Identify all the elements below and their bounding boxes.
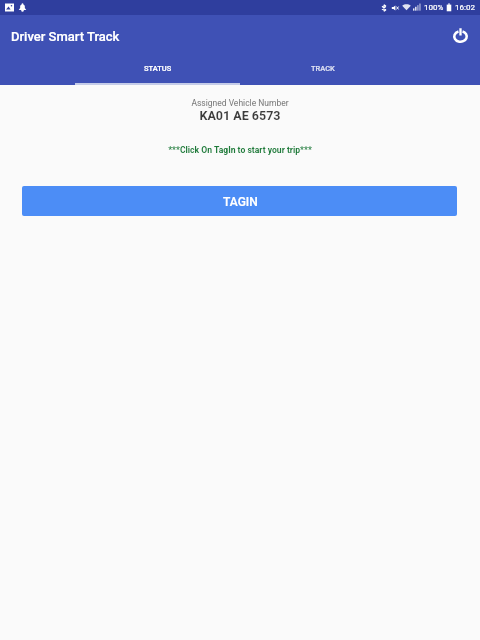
button[interactable]: STATUS [75, 57, 240, 85]
staticText: STATUS [144, 64, 172, 73]
staticText: TRACK [311, 64, 335, 73]
staticText: Assigned Vehicle Number [0, 98, 480, 108]
button[interactable]: TRACK [240, 57, 405, 85]
staticText: 16:02 [455, 3, 475, 12]
staticText: KA01 AE 6573 [0, 108, 480, 123]
staticText: ***Click On TagIn to start your trip*** [0, 145, 480, 155]
staticText: TAGIN [223, 195, 258, 209]
button[interactable]: Power / Logout [446, 21, 474, 49]
button[interactable]: TAGIN [22, 186, 457, 216]
staticText: 100% [424, 3, 444, 12]
staticText: Driver Smart Track [11, 29, 120, 44]
